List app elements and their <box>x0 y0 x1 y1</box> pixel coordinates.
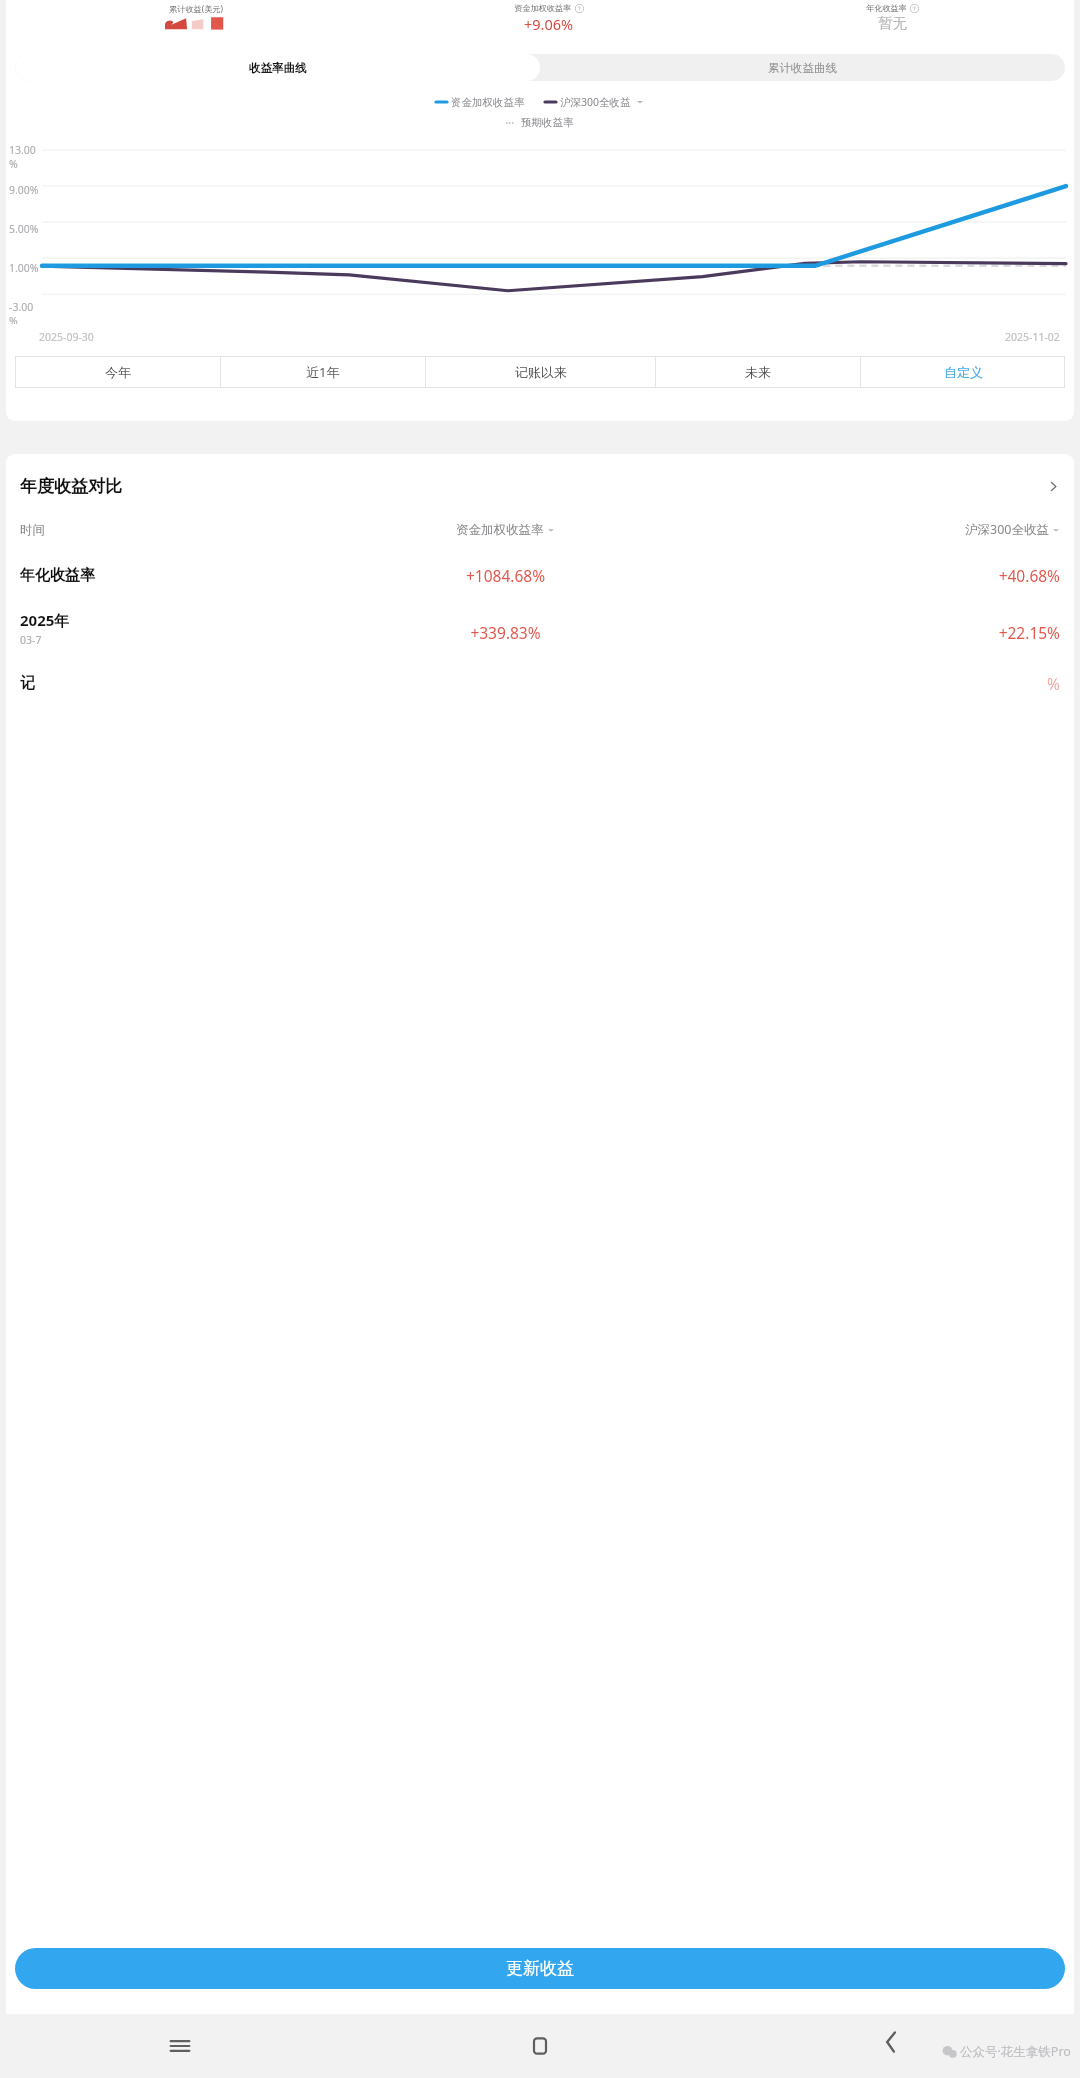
staticText: 预期收益率 <box>521 116 574 129</box>
button[interactable]: 未来 <box>656 356 860 388</box>
button[interactable]: 年化收益率 <box>20 565 1060 586</box>
staticText: 自定义 <box>944 364 983 380</box>
button[interactable]: Recent apps <box>0 2014 360 2078</box>
button[interactable]: 累计收益曲线 <box>540 54 1065 81</box>
staticText: 公众号·花生拿铁Pro <box>960 2043 1071 2060</box>
staticText: 资金加权收益率 <box>456 522 544 538</box>
button[interactable]: 记账以来 <box>426 356 655 388</box>
staticText: 资金加权收益率 <box>451 96 525 109</box>
staticText: 13.00% <box>9 143 39 171</box>
button[interactable]: 自定义 <box>861 356 1065 388</box>
staticText: 收益率曲线 <box>249 61 307 75</box>
button[interactable]: 记 <box>20 673 1060 694</box>
staticText: +22.15% <box>695 622 1060 643</box>
button[interactable]: 近1年 <box>221 356 425 388</box>
staticText: 累计收益曲线 <box>768 61 837 75</box>
button[interactable]: 今年 <box>15 356 220 388</box>
staticText: % <box>695 673 1060 694</box>
staticText: +1084.68% <box>316 565 695 586</box>
staticText: 近1年 <box>306 363 340 381</box>
button[interactable]: Back <box>720 2014 1080 2078</box>
button[interactable]: 收益率曲线 <box>15 54 540 81</box>
staticText: 累计收益(美元) <box>169 3 224 14</box>
staticText: -3.00% <box>9 300 39 324</box>
staticText: 9.00% <box>9 183 39 197</box>
staticText: 今年 <box>105 364 131 380</box>
staticText: 更新收益 <box>506 1958 574 1979</box>
staticText: 2025-09-30 <box>39 330 94 344</box>
staticText: 03-7 <box>20 633 42 647</box>
staticText: 年度收益对比 <box>20 476 122 497</box>
staticText: +9.06% <box>524 14 574 34</box>
staticText: 沪深300全收益 <box>560 95 631 109</box>
staticText: 时间 <box>20 522 316 538</box>
staticText: 1.00% <box>9 261 39 275</box>
staticText: 5.00% <box>9 222 39 236</box>
button[interactable]: Home <box>360 2014 720 2078</box>
staticText: 2025-11-02 <box>1005 330 1060 344</box>
staticText: 记 <box>20 674 316 693</box>
staticText: +339.83% <box>316 622 695 643</box>
staticText: 年化收益率 <box>20 566 316 585</box>
staticText: 资金加权收益率 <box>514 3 572 13</box>
staticText: 2025年 <box>20 610 70 630</box>
button[interactable]: 2025年 <box>20 610 1060 647</box>
staticText: 记账以来 <box>515 364 567 380</box>
staticText: 未来 <box>745 364 771 380</box>
button[interactable]: 更新收益 <box>15 1948 1065 1989</box>
staticText: 沪深300全收益 <box>965 521 1049 538</box>
staticText: 暂无 <box>878 14 907 32</box>
staticText: +40.68% <box>695 565 1060 586</box>
staticText: 年化收益率 <box>866 3 907 13</box>
button[interactable]: 年度收益对比 <box>20 476 1060 497</box>
